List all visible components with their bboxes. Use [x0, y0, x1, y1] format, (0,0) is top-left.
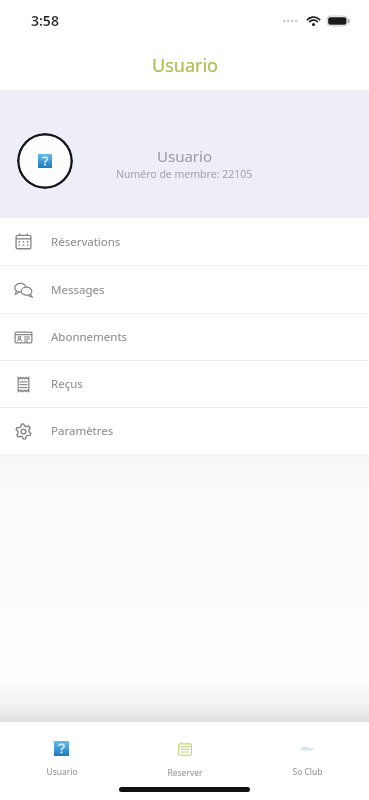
- button[interactable]: Paramètres: [0, 408, 369, 454]
- staticText: Abonnements: [51, 329, 128, 345]
- staticText: Usuario: [152, 53, 218, 78]
- button[interactable]: Messages: [0, 266, 369, 313]
- staticText: Paramètres: [51, 423, 114, 439]
- staticText: Messages: [51, 282, 105, 298]
- button[interactable]: So Club: [246, 722, 369, 778]
- staticText: Usuario: [157, 146, 212, 166]
- button[interactable]: Usuario: [0, 722, 123, 778]
- button[interactable]: Reçus: [0, 361, 369, 407]
- button[interactable]: Abonnements: [0, 314, 369, 360]
- staticText: Réservations: [51, 234, 121, 250]
- staticText: Reserver: [167, 767, 203, 779]
- button[interactable]: Profile photo: [17, 133, 73, 189]
- button[interactable]: Réservations: [0, 218, 369, 265]
- staticText: So Club: [292, 766, 323, 778]
- button[interactable]: Reserver: [123, 722, 246, 779]
- staticText: 3:58: [31, 11, 59, 30]
- staticText: Usuario: [46, 766, 78, 778]
- staticText: Numéro de membre: 22105: [116, 167, 253, 181]
- staticText: Reçus: [51, 376, 83, 392]
